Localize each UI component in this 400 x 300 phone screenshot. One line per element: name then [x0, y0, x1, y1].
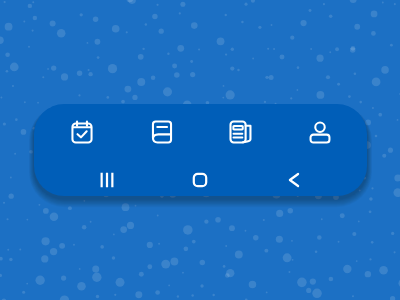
- button[interactable]: Recents: [60, 163, 153, 196]
- button[interactable]: Profile: [280, 104, 359, 160]
- button[interactable]: News: [201, 104, 280, 160]
- button[interactable]: Calendar: [42, 104, 122, 160]
- button[interactable]: Book: [122, 104, 201, 160]
- button[interactable]: Home: [153, 163, 247, 196]
- button[interactable]: Back: [247, 163, 341, 196]
